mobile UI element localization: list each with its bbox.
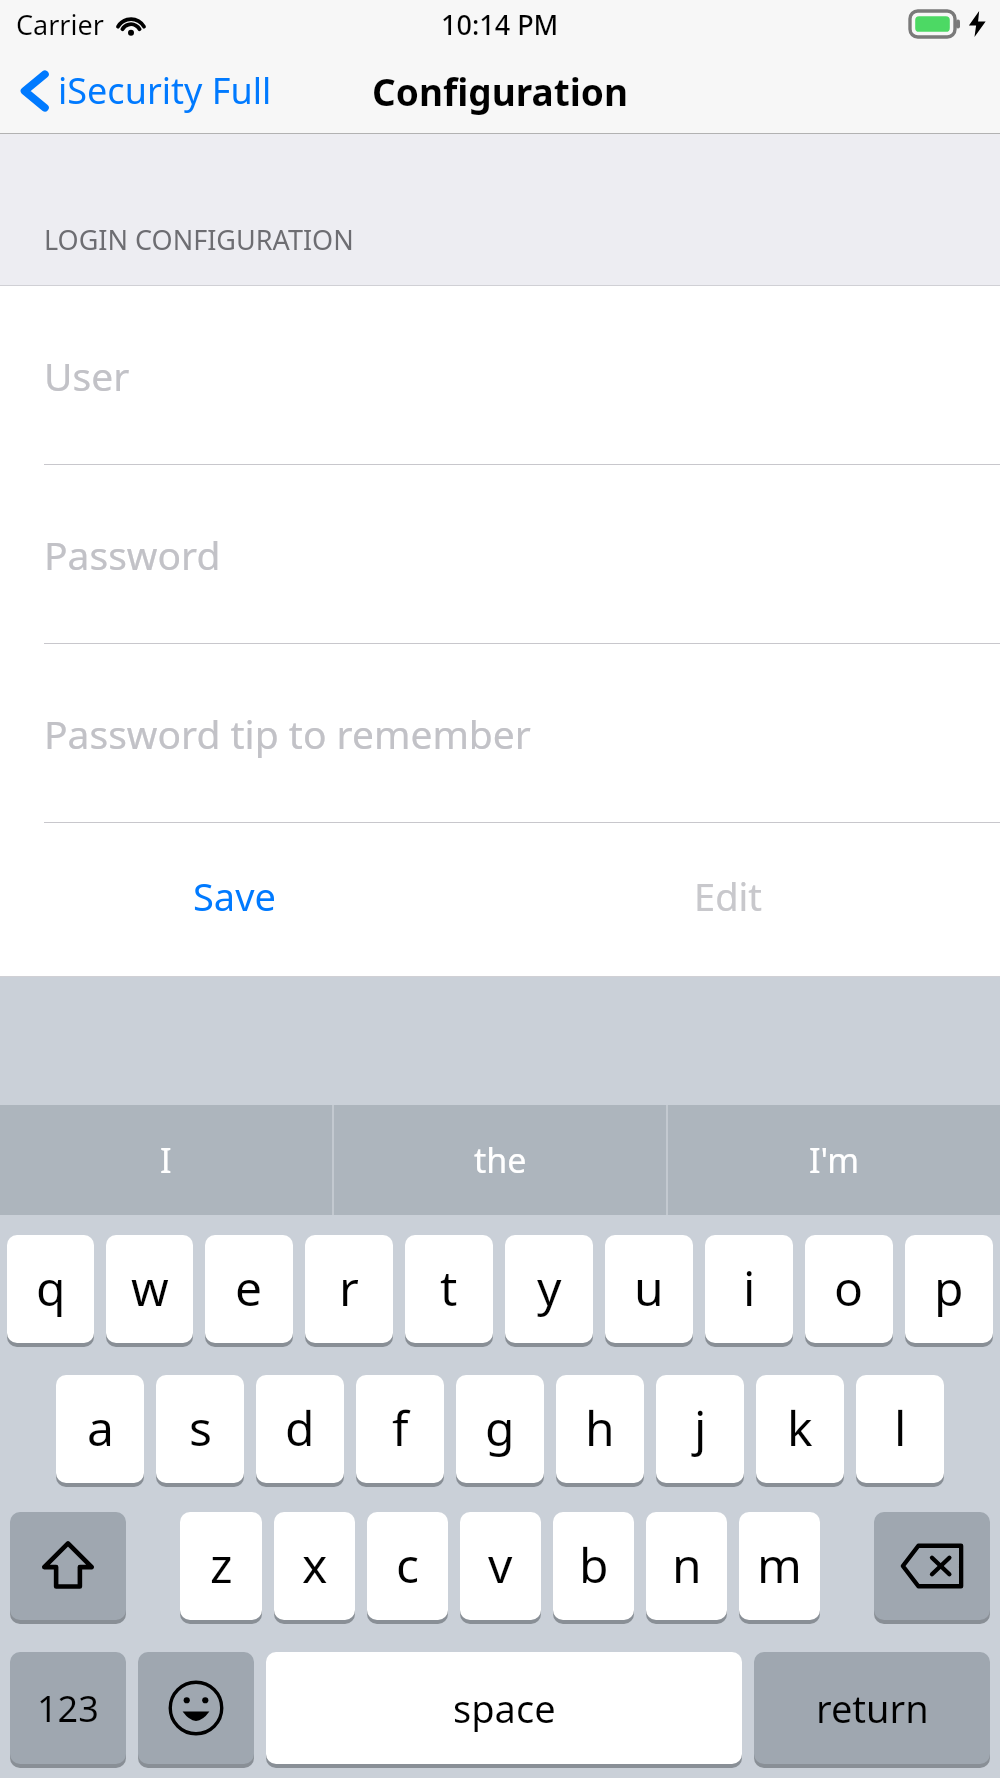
button[interactable]: Password: [0, 465, 1000, 644]
staticText: v: [488, 1532, 513, 1597]
staticText: return: [816, 1682, 929, 1734]
button[interactable]: return: [754, 1652, 990, 1768]
button[interactable]: I'm: [668, 1105, 1000, 1215]
button[interactable]: q: [7, 1235, 94, 1347]
staticText: 10:14 PM: [441, 6, 559, 43]
staticText: q: [36, 1255, 66, 1320]
staticText: User: [44, 349, 130, 402]
staticText: Edit: [694, 870, 763, 922]
button[interactable]: space: [266, 1652, 742, 1768]
button[interactable]: 123: [10, 1652, 126, 1768]
button[interactable]: Save: [0, 823, 500, 968]
button[interactable]: k: [756, 1375, 844, 1487]
staticText: y: [537, 1255, 562, 1320]
button[interactable]: the: [334, 1105, 666, 1215]
staticText: x: [302, 1532, 328, 1597]
staticText: z: [210, 1532, 233, 1597]
staticText: l: [894, 1395, 907, 1460]
staticText: r: [339, 1255, 359, 1320]
button[interactable]: h: [556, 1375, 644, 1487]
button[interactable]: y: [505, 1235, 593, 1347]
button[interactable]: w: [106, 1235, 193, 1347]
staticText: I'm: [809, 1137, 859, 1183]
button[interactable]: Edit: [500, 823, 1000, 968]
button[interactable]: a: [56, 1375, 144, 1487]
button[interactable]: User: [0, 286, 1000, 465]
staticText: the: [474, 1137, 527, 1183]
staticText: j: [694, 1395, 707, 1460]
button[interactable]: l: [856, 1375, 944, 1487]
button[interactable]: z: [180, 1512, 262, 1624]
button[interactable]: c: [367, 1512, 448, 1624]
button[interactable]: r: [305, 1235, 393, 1347]
staticText: f: [392, 1395, 409, 1460]
staticText: c: [396, 1532, 420, 1597]
staticText: Configuration: [372, 66, 628, 116]
staticText: 123: [37, 1684, 99, 1733]
staticText: p: [934, 1255, 964, 1320]
button[interactable]: i: [705, 1235, 793, 1347]
button[interactable]: b: [553, 1512, 634, 1624]
staticText: s: [189, 1395, 212, 1460]
button[interactable]: j: [656, 1375, 744, 1487]
staticText: g: [485, 1395, 515, 1460]
button[interactable]: d: [256, 1375, 344, 1487]
button[interactable]: Emoji: [138, 1652, 254, 1768]
staticText: i: [743, 1255, 756, 1320]
button[interactable]: m: [739, 1512, 820, 1624]
staticText: t: [440, 1255, 458, 1320]
staticText: o: [834, 1255, 864, 1320]
button[interactable]: Password tip to remember: [0, 644, 1000, 823]
staticText: iSecurity Full: [58, 66, 272, 115]
staticText: Password tip to remember: [44, 707, 531, 760]
staticText: I: [160, 1137, 172, 1183]
button[interactable]: u: [605, 1235, 693, 1347]
staticText: Save: [193, 870, 276, 922]
button[interactable]: v: [460, 1512, 541, 1624]
staticText: a: [87, 1395, 114, 1460]
staticText: LOGIN CONFIGURATION: [44, 221, 354, 258]
button[interactable]: s: [156, 1375, 244, 1487]
staticText: Password: [44, 528, 221, 581]
staticText: u: [634, 1255, 664, 1320]
button[interactable]: iSecurity Full: [0, 58, 286, 123]
button[interactable]: x: [274, 1512, 355, 1624]
staticText: h: [585, 1395, 615, 1460]
staticText: k: [787, 1395, 813, 1460]
staticText: e: [235, 1255, 263, 1320]
button[interactable]: o: [805, 1235, 893, 1347]
staticText: n: [672, 1532, 702, 1597]
button[interactable]: t: [405, 1235, 493, 1347]
staticText: Carrier: [16, 6, 104, 43]
staticText: d: [285, 1395, 315, 1460]
button[interactable]: Backspace: [874, 1512, 990, 1624]
staticText: b: [579, 1532, 609, 1597]
button[interactable]: e: [205, 1235, 293, 1347]
button[interactable]: f: [356, 1375, 444, 1487]
button[interactable]: I: [0, 1105, 332, 1215]
button[interactable]: p: [905, 1235, 993, 1347]
staticText: m: [757, 1532, 802, 1597]
button[interactable]: n: [646, 1512, 727, 1624]
button[interactable]: Shift: [10, 1512, 126, 1624]
staticText: w: [131, 1255, 169, 1320]
staticText: space: [453, 1682, 556, 1734]
button[interactable]: g: [456, 1375, 544, 1487]
